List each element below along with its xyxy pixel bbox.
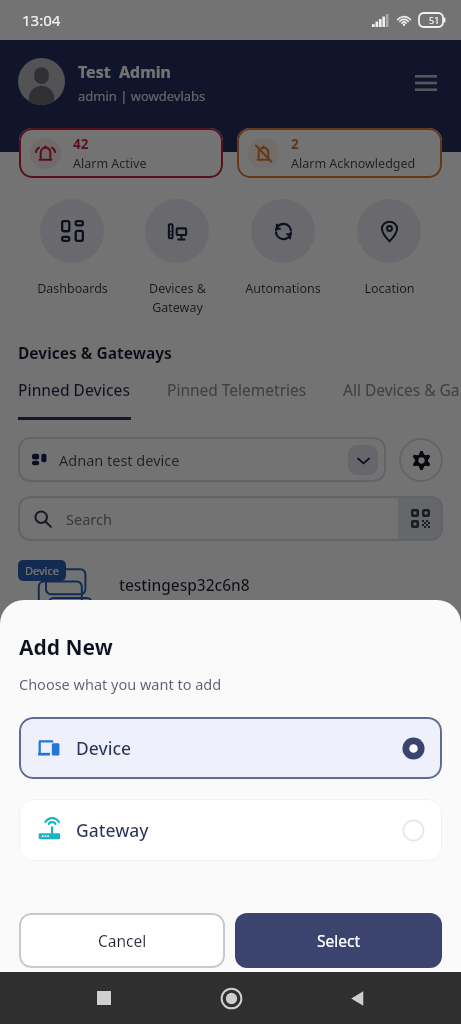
staticText: Select xyxy=(317,930,361,951)
staticText: Choose what you want to add xyxy=(19,674,222,694)
button[interactable]: Device xyxy=(19,717,442,779)
staticText: Test Admin xyxy=(78,61,171,83)
button[interactable]: Cancel xyxy=(19,913,225,968)
staticText: Dashboards xyxy=(37,280,108,297)
staticText: 2 xyxy=(291,135,299,153)
staticText: 51 xyxy=(429,14,440,26)
staticText: Alarm Active xyxy=(73,155,147,172)
button[interactable]: Dashboards xyxy=(19,199,125,297)
staticText: Location xyxy=(364,280,415,297)
staticText: Devices & Gateways xyxy=(18,342,172,363)
button[interactable]: Automations xyxy=(230,199,336,297)
button[interactable]: Pinned Devices xyxy=(18,379,130,400)
staticText: Search xyxy=(66,509,398,529)
button[interactable]: Home xyxy=(209,976,253,1020)
staticText: Cancel xyxy=(98,930,147,951)
staticText: Alarm Acknowledged xyxy=(291,155,416,172)
button[interactable]: Location xyxy=(336,199,442,297)
staticText: testingesp32c6n8 xyxy=(119,574,250,595)
button[interactable]: Recent apps xyxy=(82,976,126,1020)
button[interactable]: Pinned Telemetries xyxy=(167,379,307,400)
staticText: Automations xyxy=(245,280,321,297)
staticText: Device xyxy=(76,736,402,760)
button[interactable]: All Devices & Ga xyxy=(343,379,460,400)
staticText: 13:04 xyxy=(22,10,61,30)
button[interactable]: Select xyxy=(235,913,442,968)
button[interactable]: Gateway xyxy=(19,799,442,861)
button[interactable]: 42 xyxy=(19,128,223,178)
button[interactable]: 2 xyxy=(237,128,442,178)
staticText: Adnan test device xyxy=(59,450,348,470)
staticText: admin | wowdevlabs xyxy=(78,87,206,105)
staticText: 42 xyxy=(73,135,89,153)
staticText: Add New xyxy=(19,633,113,662)
button[interactable]: Scan QR code xyxy=(398,496,443,541)
staticText: Device xyxy=(25,563,59,578)
button[interactable]: Adnan test device xyxy=(18,437,386,482)
button[interactable]: Back xyxy=(335,976,379,1020)
button[interactable]: Devices & Gateway xyxy=(124,199,230,316)
button[interactable]: Settings xyxy=(399,438,443,482)
staticText: Gateway xyxy=(76,818,402,842)
staticText: Devices & Gateway xyxy=(149,280,206,316)
button[interactable]: Menu xyxy=(405,62,447,104)
